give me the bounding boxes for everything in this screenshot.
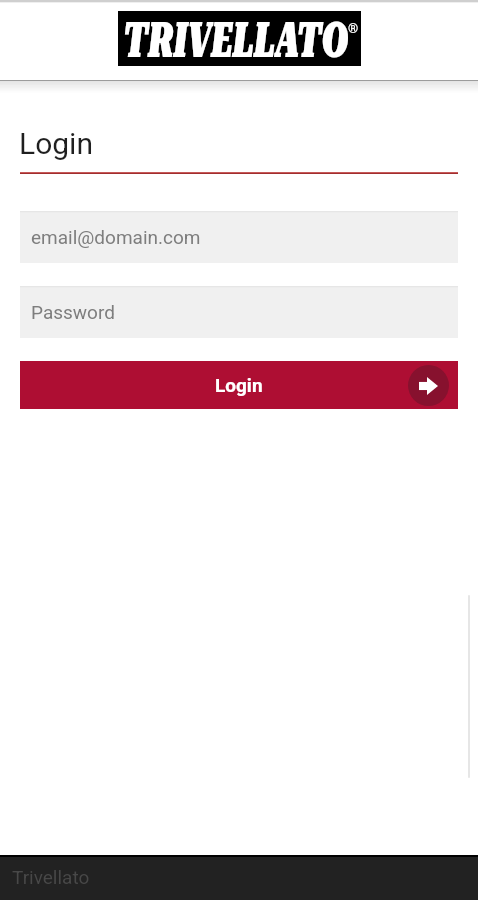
button[interactable]: Login: [20, 361, 458, 409]
button[interactable]: Trivellato: [0, 855, 478, 900]
staticText: Login: [19, 126, 93, 161]
button[interactable]: Password: [20, 286, 458, 338]
staticText: TRIVELLATO: [123, 11, 349, 66]
button[interactable]: Trivellato home: [118, 11, 361, 66]
staticText: ®: [348, 21, 359, 36]
staticText: Trivellato: [12, 866, 90, 888]
button[interactable]: email@domain.com: [20, 211, 458, 263]
staticText: Password: [31, 301, 115, 323]
staticText: email@domain.com: [31, 226, 201, 248]
other: Submit: [419, 377, 438, 395]
staticText: Login: [215, 374, 263, 396]
